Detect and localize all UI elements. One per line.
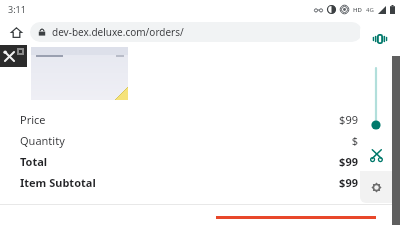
button[interactable]: Mute [360, 137, 392, 171]
staticText: $99 [339, 112, 358, 127]
staticText: 4G [366, 6, 374, 14]
staticText: 3:11 [8, 3, 26, 15]
button[interactable]: Developer tools [0, 45, 27, 67]
button[interactable]: Vibration [360, 22, 400, 56]
button[interactable]: Price [0, 109, 400, 130]
button[interactable]: Settings [360, 171, 392, 203]
staticText: $99 [339, 154, 358, 169]
staticText: $ [351, 133, 358, 148]
staticText: Total [20, 154, 48, 169]
staticText: dev-bex.deluxe.com/orders/ [52, 25, 184, 39]
staticText: $99 [339, 175, 358, 190]
staticText: Price [20, 112, 46, 127]
button[interactable]: Item Subtotal [0, 172, 400, 193]
button[interactable]: Quantity [0, 130, 400, 151]
button[interactable]: Total [0, 151, 400, 172]
staticText: HD [353, 6, 362, 14]
staticText: Quantity [20, 133, 65, 148]
staticText: Item Subtotal [20, 175, 96, 190]
button[interactable]: Home [6, 22, 26, 42]
button[interactable]: Volume slider [360, 60, 392, 137]
button[interactable]: dev-bex.deluxe.com/orders/ [30, 22, 362, 42]
